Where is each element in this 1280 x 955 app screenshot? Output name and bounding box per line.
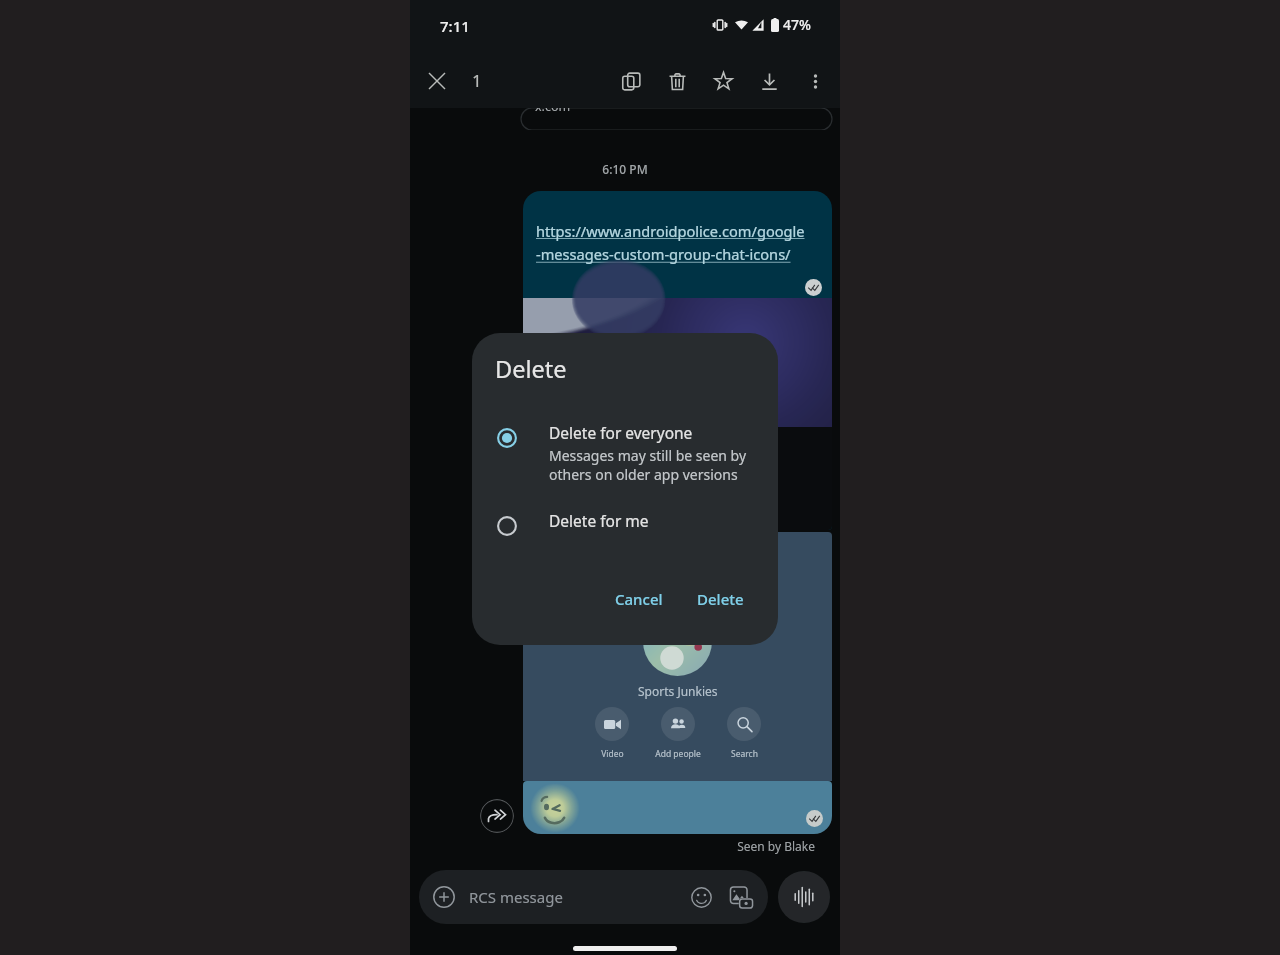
staticText: Give your group chats customized l... [537,467,667,502]
staticText: x.com [535,108,571,115]
button[interactable]: Gallery [726,882,756,912]
staticText: Google Messages auto-... [537,441,697,459]
button[interactable]: Star [703,61,743,101]
button[interactable]: Copy [611,61,651,101]
button[interactable]: Forward [480,799,514,833]
button[interactable]: Video [584,707,640,760]
button[interactable]: Search [716,707,772,760]
staticText: Sports Junkies [638,683,718,699]
staticText: Add people [655,748,701,760]
staticText: Delete for everyone [549,422,693,443]
button[interactable]: Delete for me [472,510,778,536]
button[interactable]: https://www.androidpolice.com/google -me… [523,191,832,530]
staticText: 47% [783,15,811,34]
staticText: Seen by Blake [410,838,815,854]
button[interactable]: Add people [650,707,706,760]
staticText: 7:11 [440,16,470,36]
staticText: Delete [495,353,567,385]
staticText: Video [601,748,624,760]
button[interactable]: Delete for everyone [472,422,778,484]
button[interactable]: Download [749,61,789,101]
button[interactable]: Cancel [603,579,675,619]
button[interactable]: Delete [685,579,756,619]
staticText: 1 [472,69,482,92]
button[interactable]: More options [795,61,835,101]
button[interactable]: Delete [657,61,697,101]
button[interactable]: RCS message [419,870,768,924]
button[interactable]: Voice message [778,871,830,923]
button[interactable]: Sports Junkies [523,532,832,781]
staticText: Cancel [615,589,663,609]
staticText: Messages may still be seen by others on … [549,446,747,484]
button[interactable] [523,781,832,834]
staticText: Search [731,748,758,760]
button[interactable]: Close selection [416,60,458,102]
staticText: https://www.androidpolice.com/google -me… [536,221,805,265]
staticText: Delete for me [549,510,649,531]
staticText: Delete [697,589,744,609]
staticText: RCS message [469,887,563,907]
button[interactable]: Emoji [686,882,716,912]
staticText: 6:10 PM [410,161,840,177]
